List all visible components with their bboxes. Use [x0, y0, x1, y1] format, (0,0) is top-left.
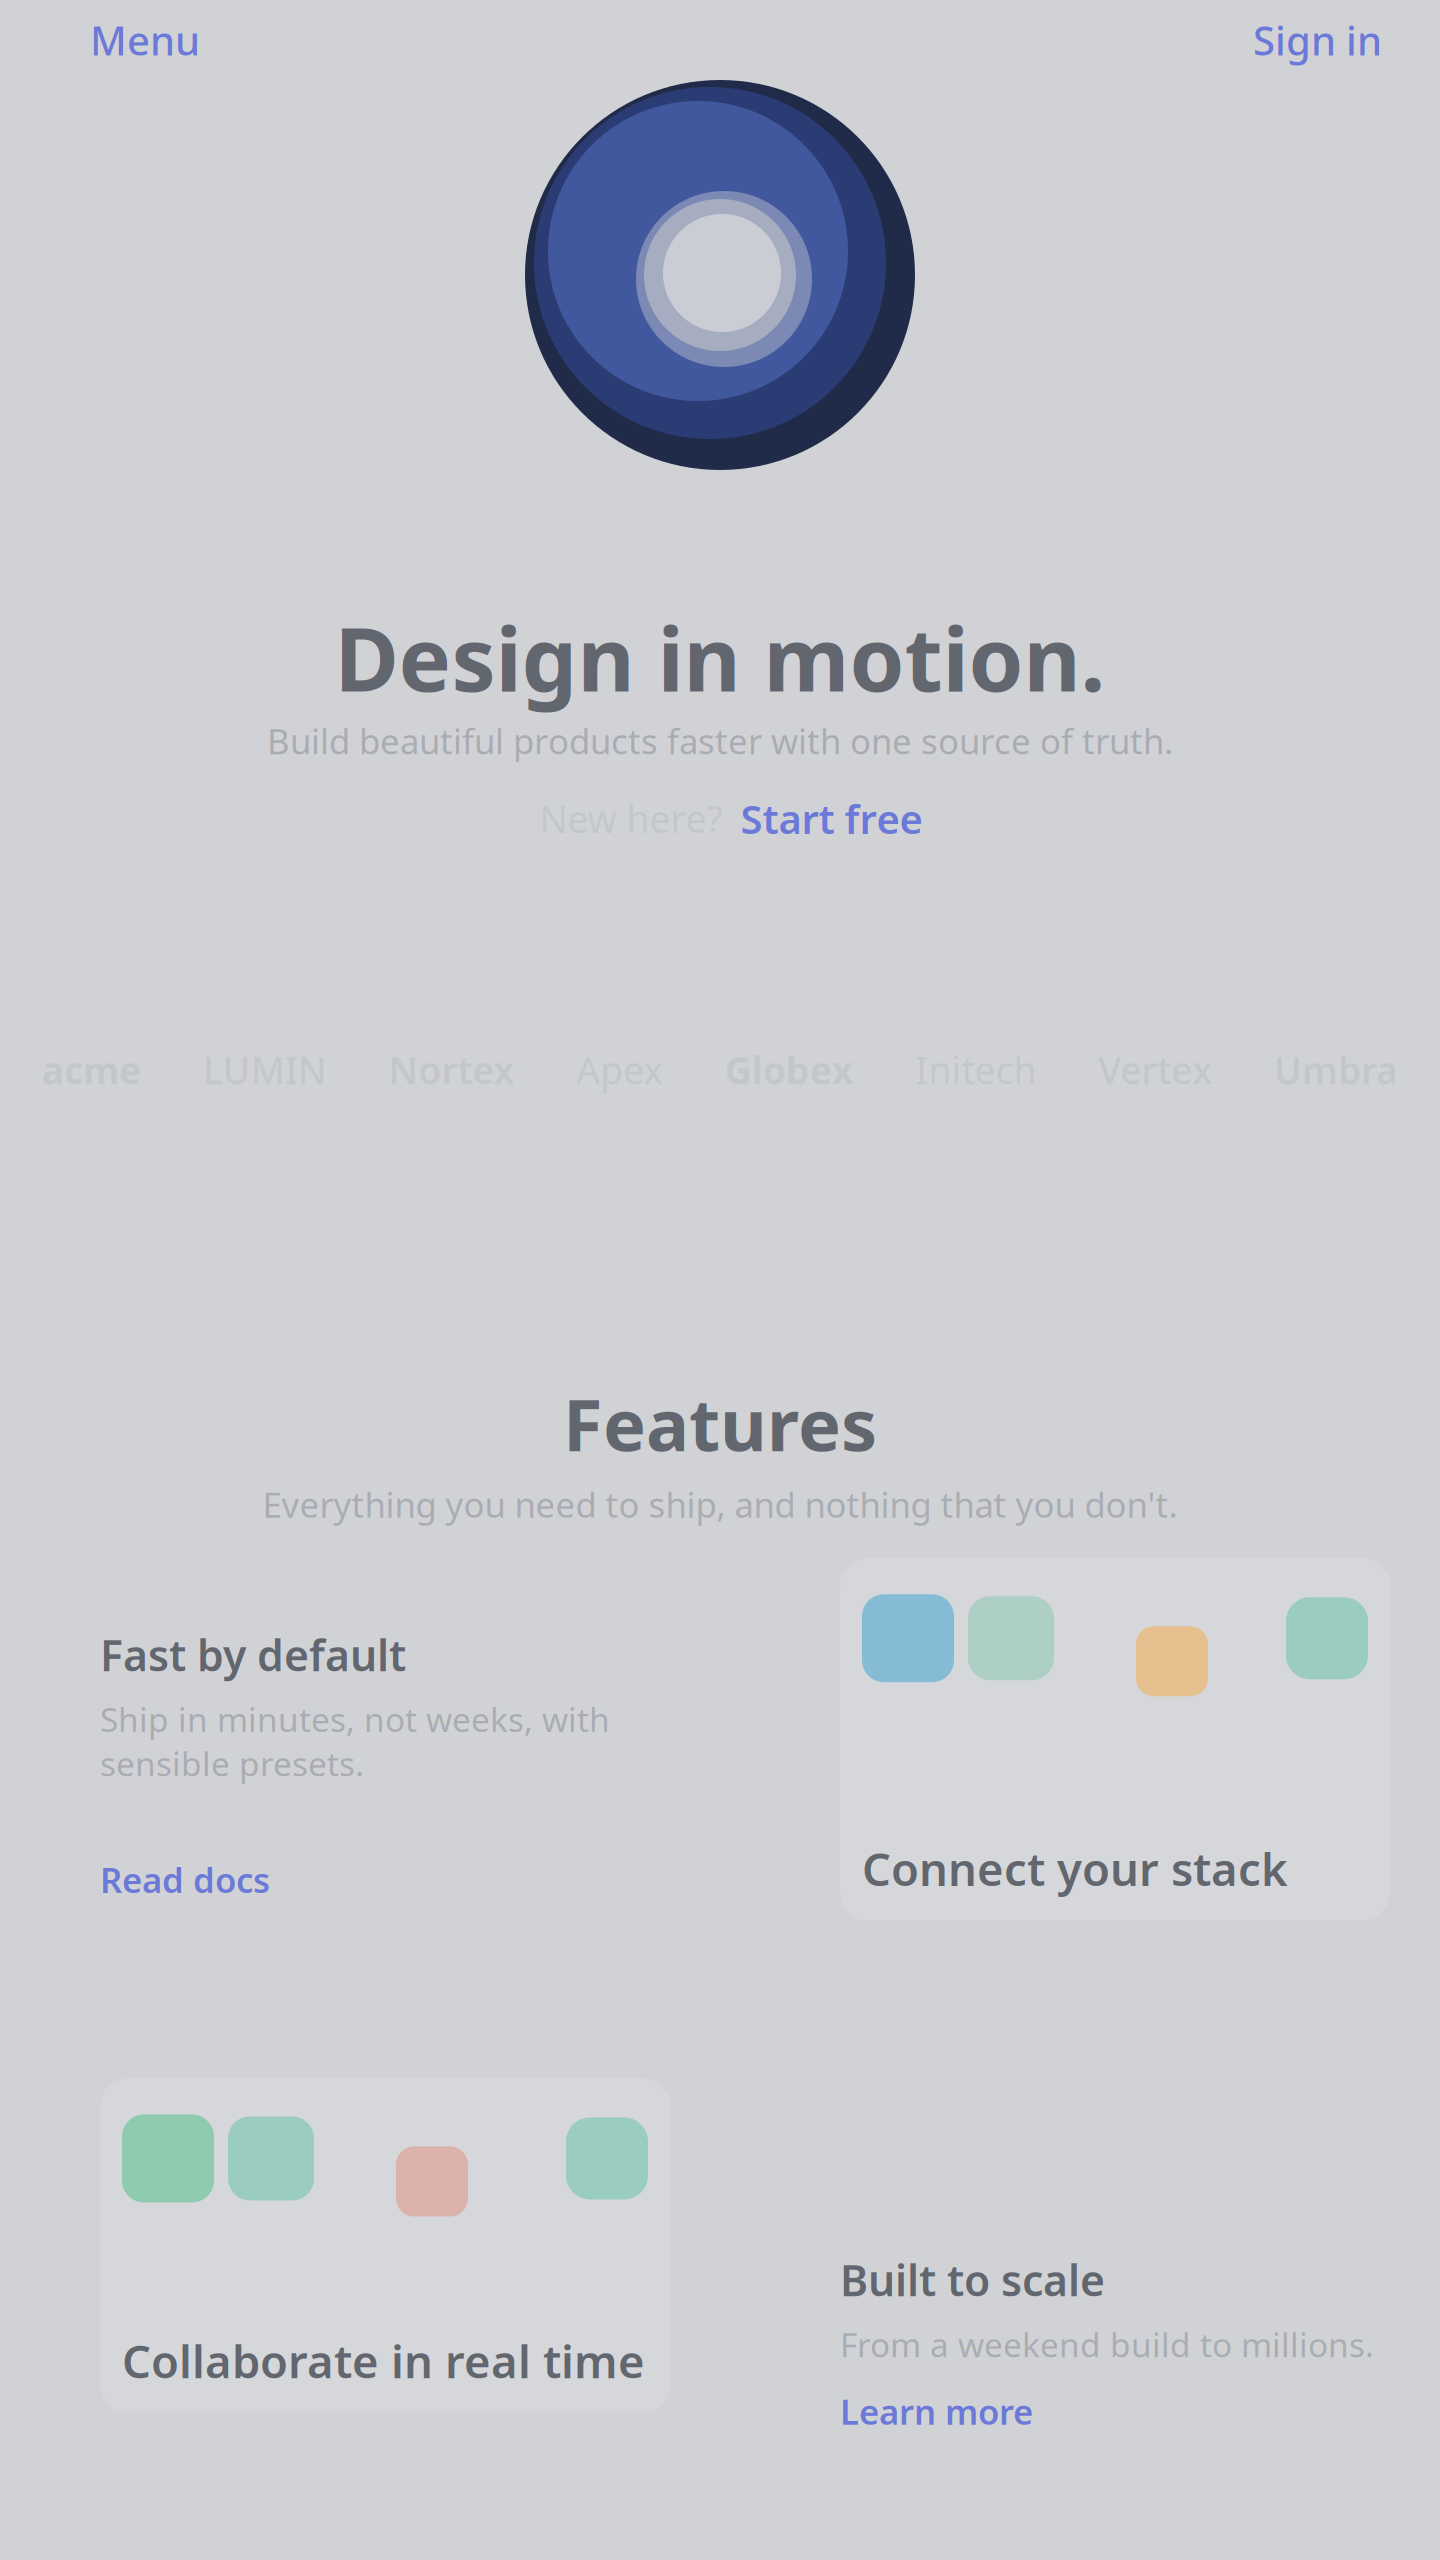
- staticText: Globex: [725, 1045, 854, 1095]
- staticText: Read docs: [100, 1856, 270, 1902]
- staticText: Design in motion.: [334, 599, 1105, 716]
- staticText: Sign in: [1253, 13, 1382, 66]
- staticText: Ship in minutes, not weeks, with sensibl…: [100, 1697, 610, 1785]
- button[interactable]: Collaborate in real time: [100, 2078, 670, 2413]
- staticText: Nortex: [388, 1045, 514, 1095]
- staticText: Initech: [916, 1045, 1037, 1095]
- staticText: From a weekend build to millions.: [840, 2322, 1374, 2366]
- staticText: Build beautiful products faster with one…: [267, 718, 1173, 764]
- staticText: Apex: [576, 1045, 663, 1095]
- staticText: Menu: [90, 13, 200, 66]
- button[interactable]: Start free: [732, 780, 930, 857]
- staticText: acme: [42, 1045, 141, 1095]
- staticText: Features: [563, 1376, 877, 1471]
- button[interactable]: Menu: [80, 3, 210, 76]
- staticText: Vertex: [1098, 1045, 1212, 1095]
- staticText: Connect your stack: [862, 1838, 1288, 1898]
- button[interactable]: Sign in: [1243, 3, 1392, 76]
- staticText: New here?: [539, 794, 722, 843]
- button[interactable]: Connect your stack: [840, 1558, 1390, 1920]
- staticText: LUMIN: [203, 1045, 327, 1095]
- staticText: Learn more: [840, 2388, 1033, 2434]
- staticText: Start free: [740, 792, 922, 845]
- staticText: Fast by default: [100, 1626, 406, 1683]
- button[interactable]: Learn more: [840, 2380, 1033, 2442]
- staticText: Built to scale: [840, 2251, 1105, 2308]
- staticText: Everything you need to ship, and nothing…: [262, 1481, 1177, 1527]
- button[interactable]: Read docs: [100, 1848, 270, 1910]
- staticText: Collaborate in real time: [122, 2330, 645, 2391]
- staticText: Umbra: [1274, 1045, 1398, 1095]
